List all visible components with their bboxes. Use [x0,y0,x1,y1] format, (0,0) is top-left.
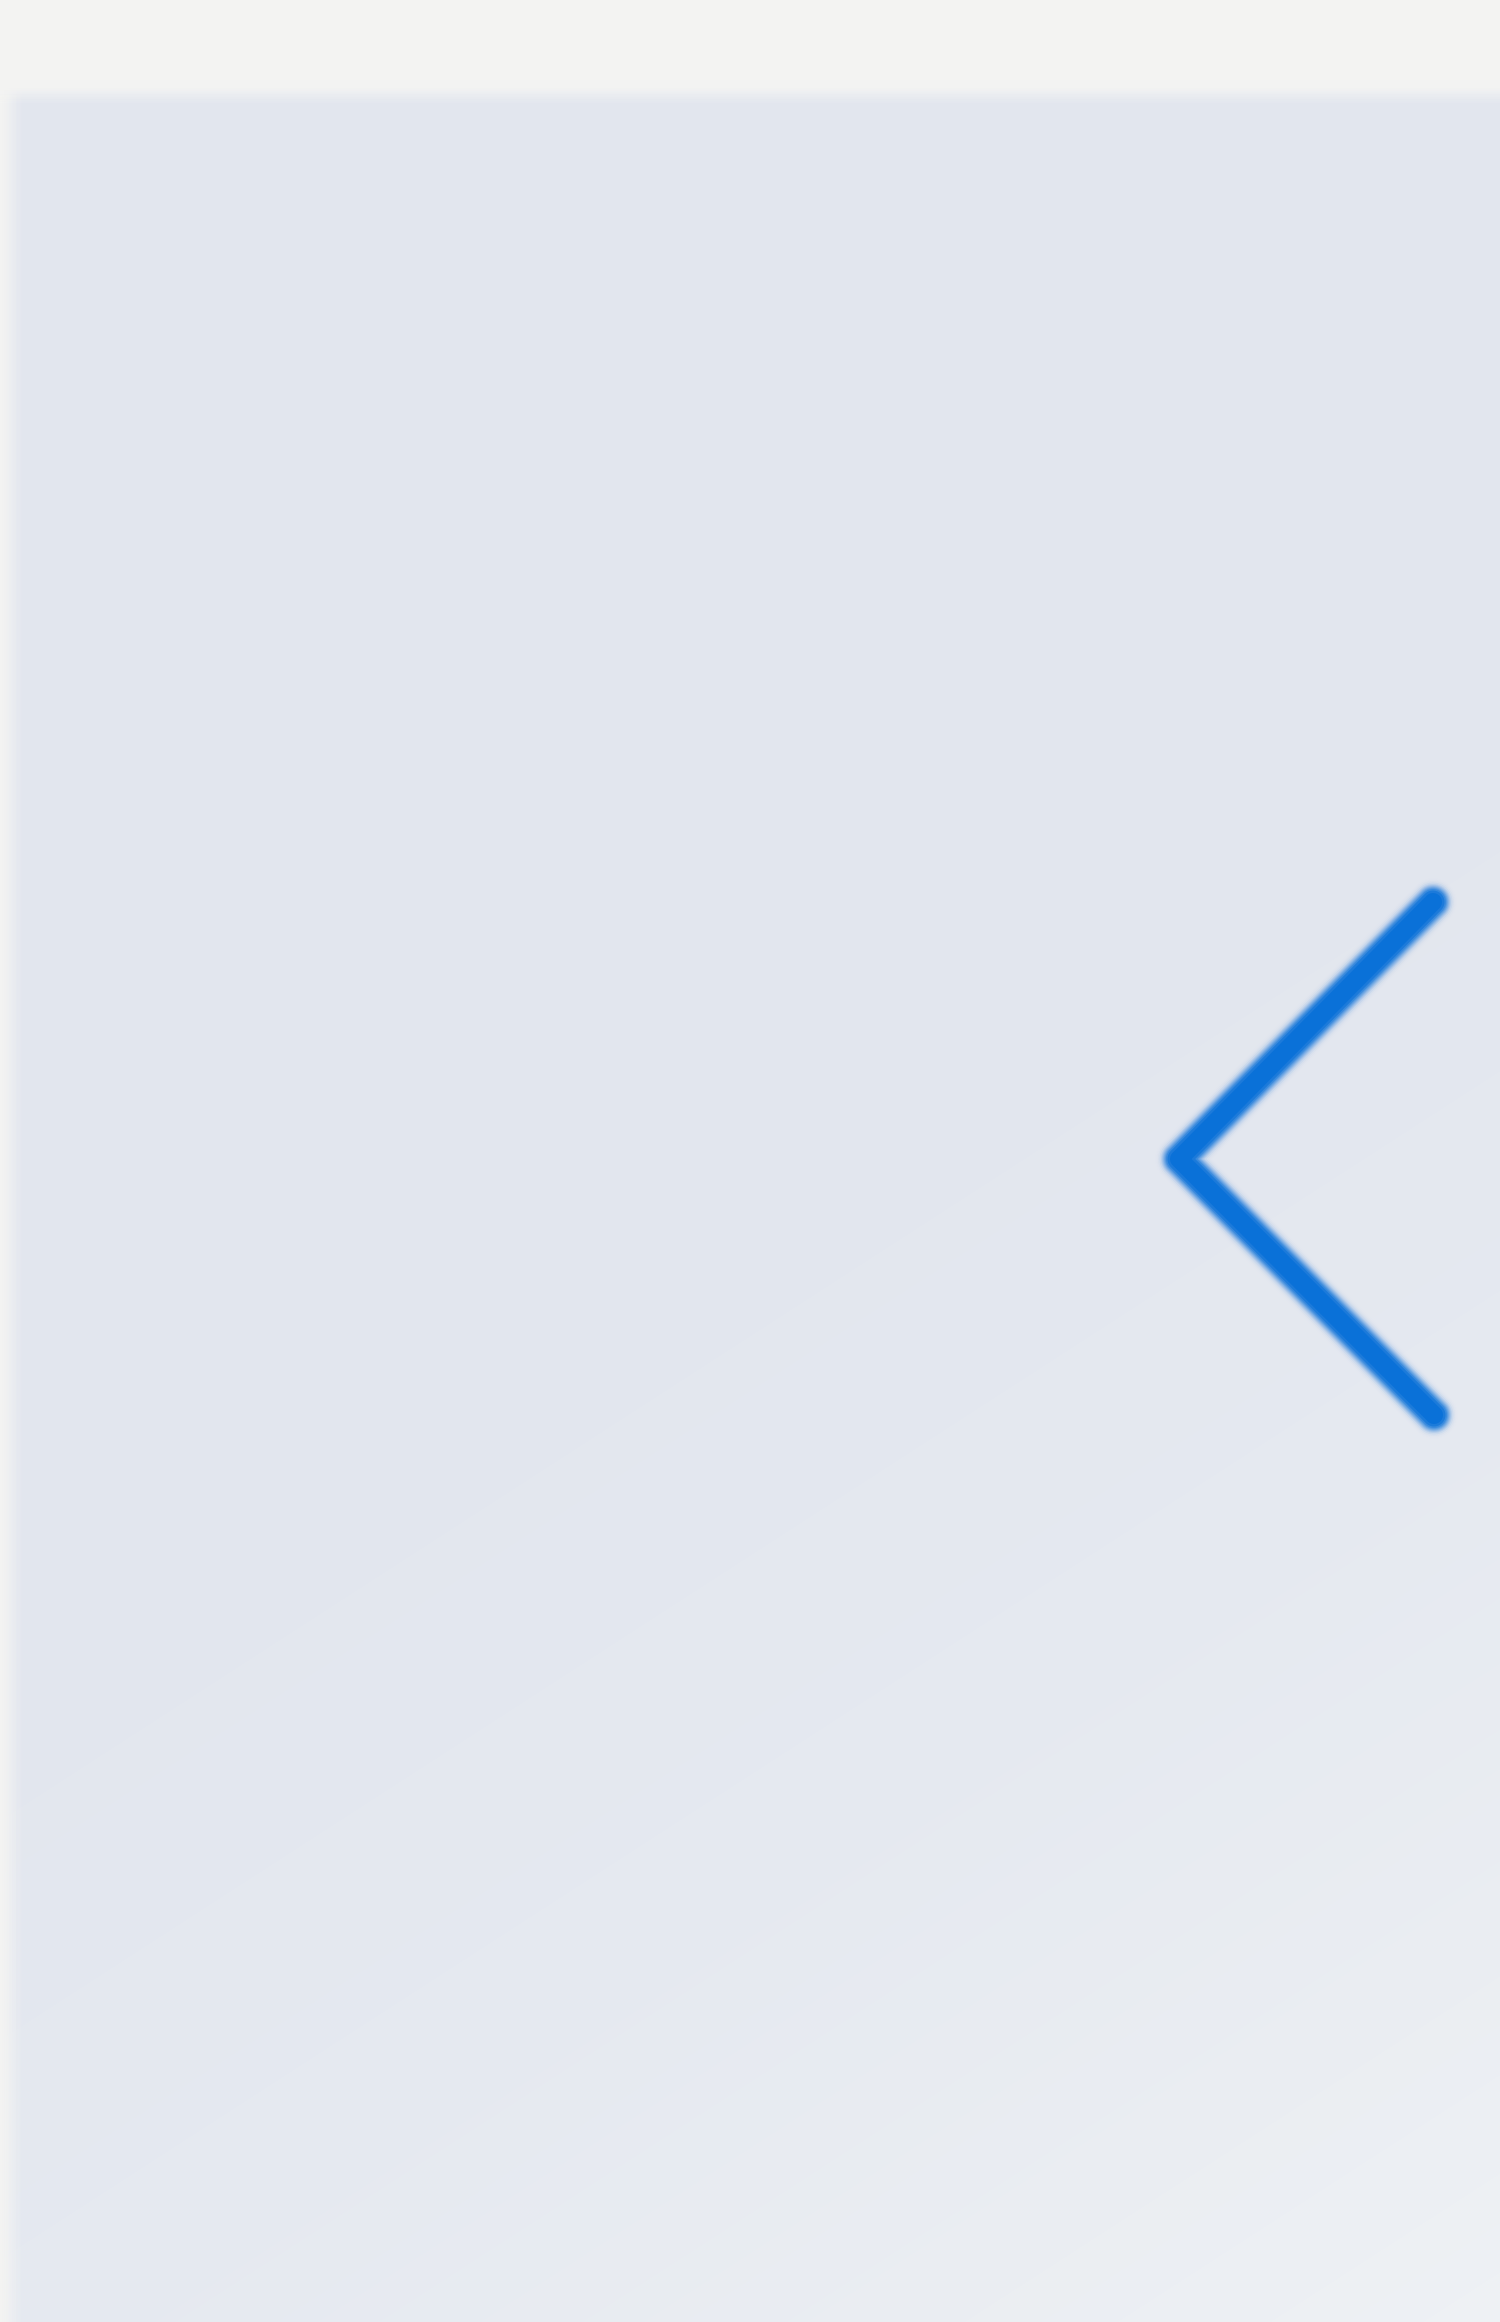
button[interactable]: Back [1133,869,1453,1449]
